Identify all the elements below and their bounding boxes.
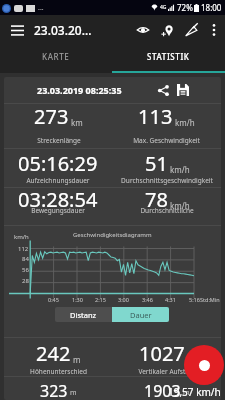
staticText: m [183, 388, 190, 398]
staticText: 18:00 [201, 2, 222, 13]
button[interactable]: Add waypoint [155, 18, 179, 42]
staticText: 1:30 [72, 296, 83, 303]
staticText: 1903 [144, 380, 181, 400]
staticText: 03:28:54 [18, 186, 98, 213]
staticText: Bewegungsdauer [31, 206, 85, 215]
staticText: km/h [170, 164, 190, 175]
staticText: 323 [40, 380, 68, 400]
staticText: 23.03.20… [34, 22, 92, 38]
staticText: Vertikaler Aufstieg [138, 367, 195, 376]
staticText: 51 [145, 150, 168, 177]
staticText: 4:31 [165, 296, 176, 303]
staticText: 113 [138, 103, 173, 130]
staticText: 78 [145, 186, 168, 213]
staticText: 3:00 [118, 296, 129, 303]
staticText: m [70, 388, 77, 398]
staticText: 2:15 [95, 296, 106, 303]
button[interactable]: Dauer [112, 307, 169, 322]
button[interactable]: Save [174, 81, 192, 99]
staticText: km/h [170, 200, 190, 211]
staticText: 84 [22, 255, 29, 263]
staticText: m [73, 354, 81, 365]
staticText: 19,57 km/h [168, 385, 221, 399]
staticText: 0:45 [48, 296, 59, 303]
button[interactable]: STATISTIK [112, 44, 225, 73]
staticText: Geschwindigkeitsdiagramm [73, 231, 152, 239]
staticText: 5:16 [189, 296, 200, 303]
staticText: 72% [177, 2, 193, 13]
staticText: Durchschnittsgeschwindigkeit [121, 176, 213, 185]
staticText: 23.03.2019 08:25:35 [37, 84, 122, 96]
staticText: 3:46 [142, 296, 153, 303]
staticText: 242 [36, 340, 71, 367]
staticText: km [71, 117, 83, 128]
staticText: STATISTIK [147, 51, 190, 62]
button[interactable]: More options [203, 19, 225, 41]
button[interactable]: Visibility [131, 18, 155, 42]
staticText: km/h [14, 233, 29, 241]
button[interactable]: KARTE [0, 44, 112, 73]
staticText: Streckenlänge [37, 136, 81, 145]
staticText: 112 [18, 245, 29, 253]
staticText: 273 [34, 103, 69, 130]
staticText: ... [38, 3, 44, 13]
button[interactable]: Clear track [179, 18, 203, 42]
staticText: 28 [22, 277, 29, 285]
staticText: km/h [175, 117, 195, 128]
staticText: Distanz [70, 310, 97, 320]
staticText: Std:Min [200, 296, 220, 303]
staticText: 4G [160, 4, 167, 11]
staticText: 05:16:29 [18, 150, 98, 177]
staticText: Höhenunterschied [30, 367, 87, 376]
staticText: Aufzeichnungsdauer [26, 176, 90, 185]
staticText: Durchschnittliche Bewegungsgeschwindigke… [124, 206, 210, 216]
button[interactable]: Navigation menu [5, 18, 29, 42]
staticText: 1027 [139, 340, 185, 367]
button[interactable]: Share [154, 81, 172, 99]
staticText: 56 [22, 266, 29, 274]
staticText: Dauer [130, 310, 152, 320]
staticText: Max. Geschwindigkeit [133, 136, 200, 145]
button[interactable]: Record [184, 345, 224, 385]
staticText: KARTE [42, 51, 70, 62]
button[interactable]: Distanz [55, 307, 112, 322]
